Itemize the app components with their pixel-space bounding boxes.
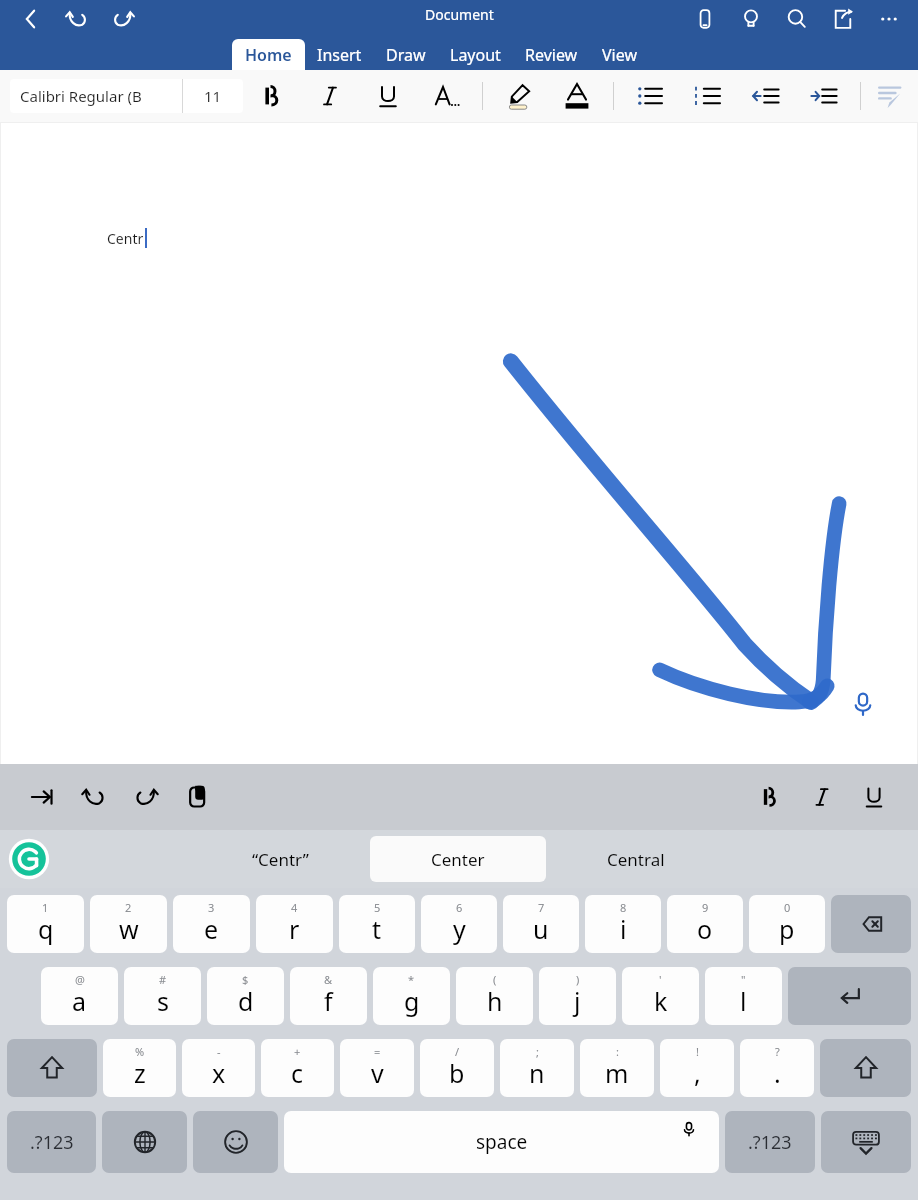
button[interactable]: 4 [256,895,333,953]
button[interactable]: 0 [749,895,825,953]
button[interactable]: Decrease indent [737,73,795,119]
staticText: .?123 [30,1130,74,1155]
button[interactable]: Font formatting [417,73,475,119]
button[interactable]: Dictate [831,672,895,736]
button[interactable]: Underline [359,73,417,119]
button[interactable]: Phone layout [682,2,728,36]
button[interactable]: % [103,1039,176,1097]
staticText: . [774,1056,781,1090]
button[interactable]: 1 [7,895,84,953]
button[interactable]: ! [660,1039,734,1097]
button[interactable]: Draw [374,39,438,70]
button[interactable]: : [580,1039,654,1097]
button[interactable]: 2 [90,895,167,953]
button[interactable]: Undo [54,2,100,36]
button[interactable]: Grammarly [8,838,50,880]
button[interactable]: + [261,1039,334,1097]
button[interactable]: Redo [100,2,146,36]
button[interactable]: Font color [548,73,606,119]
button[interactable]: @ [41,967,118,1025]
button[interactable]: Tab [16,772,68,822]
button[interactable]: Bold [243,73,301,119]
button[interactable]: Redo [120,772,172,822]
button[interactable]: # [124,967,201,1025]
button[interactable]: Bold [744,772,796,822]
button[interactable]: Home [232,39,305,70]
button[interactable]: " [705,967,782,1025]
button[interactable]: - [182,1039,255,1097]
button[interactable]: Backspace [831,895,911,953]
staticText: Review [525,44,578,66]
staticText: b [449,1056,465,1090]
button[interactable]: Return [788,967,911,1025]
button[interactable]: Hide keyboard [821,1111,911,1173]
button[interactable]: Insert [305,39,374,70]
button[interactable]: Tell me [728,2,774,36]
button[interactable]: ' [622,967,699,1025]
button[interactable]: Center [370,836,546,882]
button[interactable]: Share [820,2,866,36]
staticText: 5 [374,900,381,915]
staticText: u [533,912,549,946]
button[interactable]: 7 [503,895,579,953]
button[interactable]: $ [207,967,284,1025]
button[interactable]: Layout [438,39,513,70]
button[interactable]: Bullets [621,73,679,119]
button[interactable]: Shift [820,1039,911,1097]
button[interactable]: Undo [68,772,120,822]
staticText: ! [696,1044,699,1059]
button[interactable]: ; [500,1039,574,1097]
button[interactable]: Italic [796,772,848,822]
staticText: - [217,1044,221,1059]
staticText: z [134,1056,146,1090]
button[interactable]: Back [8,2,54,36]
button[interactable]: “Centr” [190,837,370,881]
staticText: 9 [702,900,709,915]
staticText: % [135,1044,145,1059]
button[interactable]: Underline [848,772,900,822]
staticText: space [476,1129,528,1155]
button[interactable]: Format painter [868,73,912,119]
staticText: t [372,912,382,946]
button[interactable]: Emoji [193,1111,278,1173]
button[interactable]: Increase indent [795,73,853,119]
button[interactable]: Highlight [490,73,548,119]
button[interactable]: 8 [585,895,661,953]
button[interactable]: ( [456,967,533,1025]
button[interactable]: & [290,967,367,1025]
button[interactable]: Italic [301,73,359,119]
button[interactable]: / [420,1039,494,1097]
staticText: $ [242,972,249,987]
button[interactable]: 9 [667,895,743,953]
button[interactable]: = [340,1039,414,1097]
staticText: s [157,984,169,1018]
staticText: Document [425,5,494,24]
button[interactable]: * [373,967,450,1025]
staticText: 2 [125,900,132,915]
button[interactable]: Clipboard [172,772,224,822]
staticText: g [404,984,420,1018]
button[interactable]: .?123 [725,1111,815,1173]
staticText: 1 [42,900,49,915]
button[interactable]: Review [513,39,590,70]
button[interactable]: 6 [421,895,497,953]
staticText: @ [75,972,85,987]
button[interactable]: View [590,39,650,70]
button[interactable]: 3 [173,895,250,953]
button[interactable]: More [866,2,912,36]
button[interactable]: 5 [339,895,415,953]
staticText: m [605,1056,629,1090]
button[interactable]: ? [740,1039,814,1097]
button[interactable]: Shift [7,1039,97,1097]
staticText: .?123 [748,1130,792,1155]
button[interactable]: ) [539,967,616,1025]
staticText: Calibri Regular (B [20,86,142,106]
button[interactable]: Numbering [679,73,737,119]
staticText: e [204,912,219,946]
button[interactable]: space [284,1111,719,1173]
button[interactable]: .?123 [7,1111,96,1173]
button[interactable]: Calibri Regular (B [10,79,243,113]
button[interactable]: Central [546,837,726,881]
button[interactable]: Search [774,2,820,36]
button[interactable]: Change keyboard [102,1111,187,1173]
